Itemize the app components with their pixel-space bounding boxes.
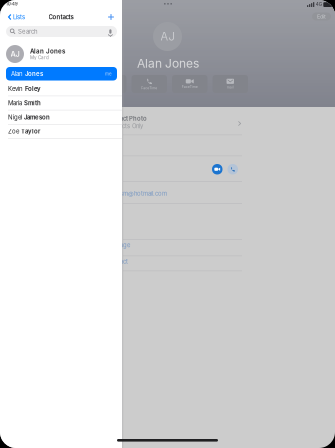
button[interactable]: message <box>91 75 126 93</box>
staticText: Alan Jones <box>137 56 199 70</box>
button[interactable]: Lists <box>8 12 42 22</box>
staticText: FaceTime <box>182 85 198 89</box>
button[interactable]: mail <box>212 75 248 93</box>
staticText: Edit <box>317 13 326 20</box>
staticText: 4G <box>316 1 322 7</box>
button[interactable]: FaceTime <box>131 75 167 93</box>
button[interactable]: FaceTime video <box>212 164 222 174</box>
staticText: FaceTime <box>141 86 157 90</box>
staticText: Contacts Only <box>106 122 143 130</box>
button[interactable]: FaceTime <box>172 75 207 93</box>
button[interactable]: FaceTime audio <box>227 164 238 174</box>
staticText: Kevin Foley <box>8 85 41 92</box>
staticText: Maria Smith <box>8 99 41 107</box>
staticText: Zoe Taylor <box>8 128 40 135</box>
staticText: Alan Jones <box>30 47 65 55</box>
staticText: AJ <box>160 30 174 43</box>
staticText: Search <box>18 28 38 35</box>
staticText: Contact Photo <box>106 115 147 122</box>
button[interactable]: Add contact <box>104 11 118 23</box>
staticText: Nigel Jameson <box>8 114 50 121</box>
staticText: mail <box>227 85 234 89</box>
button[interactable]: Alan Jones <box>6 67 117 80</box>
button[interactable]: AJ <box>0 42 122 66</box>
staticText: Lists <box>13 13 25 21</box>
staticText: Alan Jones <box>11 70 43 77</box>
staticText: alanjonesm@hotmail.com <box>99 190 167 197</box>
button[interactable]: Zoe Taylor <box>0 125 122 139</box>
button[interactable]: Edit <box>312 12 331 20</box>
staticText: Share Contact <box>90 258 128 265</box>
button[interactable]: Maria Smith <box>0 96 122 110</box>
staticText: me <box>105 71 112 76</box>
button[interactable]: Kevin Foley <box>0 82 122 96</box>
staticText: Send Message <box>90 241 130 249</box>
staticText: AJ <box>10 49 19 58</box>
staticText: My Card <box>30 55 49 60</box>
staticText: Contacts <box>48 13 73 21</box>
button[interactable]: Nigel Jameson <box>0 110 122 125</box>
staticText: 10:49 <box>6 1 18 6</box>
